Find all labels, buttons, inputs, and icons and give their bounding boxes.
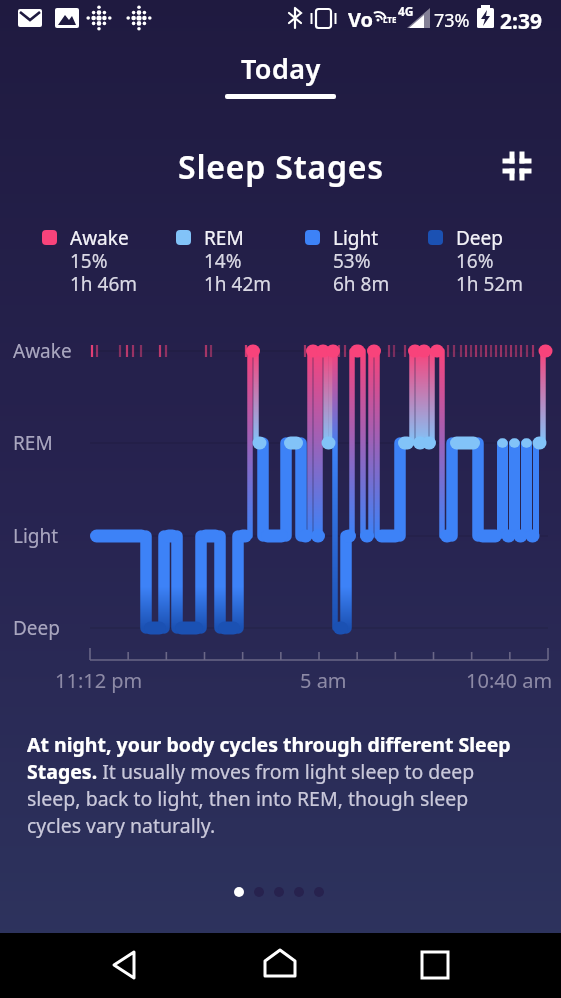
staticText: 1h 46m — [70, 271, 138, 297]
staticText: Deep — [456, 225, 503, 251]
staticText: 15% — [70, 248, 108, 274]
staticText: 11:12 pm — [55, 667, 143, 694]
button[interactable] — [0, 0, 561, 998]
staticText: cycles vary naturally. — [27, 812, 216, 839]
button[interactable] — [501, 150, 533, 182]
staticText: REM — [13, 430, 53, 456]
staticText: Deep — [13, 615, 60, 641]
staticText: 4G — [398, 3, 414, 19]
staticText: Awake — [13, 338, 72, 364]
staticText: 2:39 — [500, 7, 542, 36]
button[interactable] — [274, 887, 284, 897]
staticText: Awake — [70, 225, 129, 251]
staticText: 53% — [333, 248, 371, 274]
staticText: 10:40 am — [466, 667, 553, 694]
staticText: 1h 52m — [456, 271, 524, 297]
staticText: At night, your body cycles through diffe… — [27, 731, 511, 758]
staticText: LTE — [383, 14, 397, 25]
staticText: 16% — [456, 248, 494, 274]
button[interactable] — [250, 935, 310, 995]
staticText: Light — [333, 225, 379, 251]
staticText: 1h 42m — [204, 271, 272, 297]
staticText: Vo — [348, 6, 374, 33]
staticText: sleep, back to light, then into REM, tho… — [27, 785, 469, 812]
staticText: 73% — [434, 8, 470, 33]
staticText: 14% — [204, 248, 242, 274]
button[interactable] — [405, 935, 465, 995]
button[interactable] — [234, 887, 244, 897]
staticText: Today — [241, 50, 321, 87]
staticText: REM — [204, 225, 244, 251]
staticText: 6h 8m — [333, 271, 390, 297]
button[interactable] — [95, 935, 155, 995]
button[interactable] — [314, 887, 324, 897]
button[interactable] — [254, 887, 264, 897]
staticText: Stages. It usually moves from light slee… — [27, 758, 475, 785]
staticText: Sleep Stages — [178, 145, 384, 189]
staticText: 5 am — [300, 667, 347, 694]
button[interactable] — [294, 887, 304, 897]
staticText: Light — [13, 523, 59, 549]
